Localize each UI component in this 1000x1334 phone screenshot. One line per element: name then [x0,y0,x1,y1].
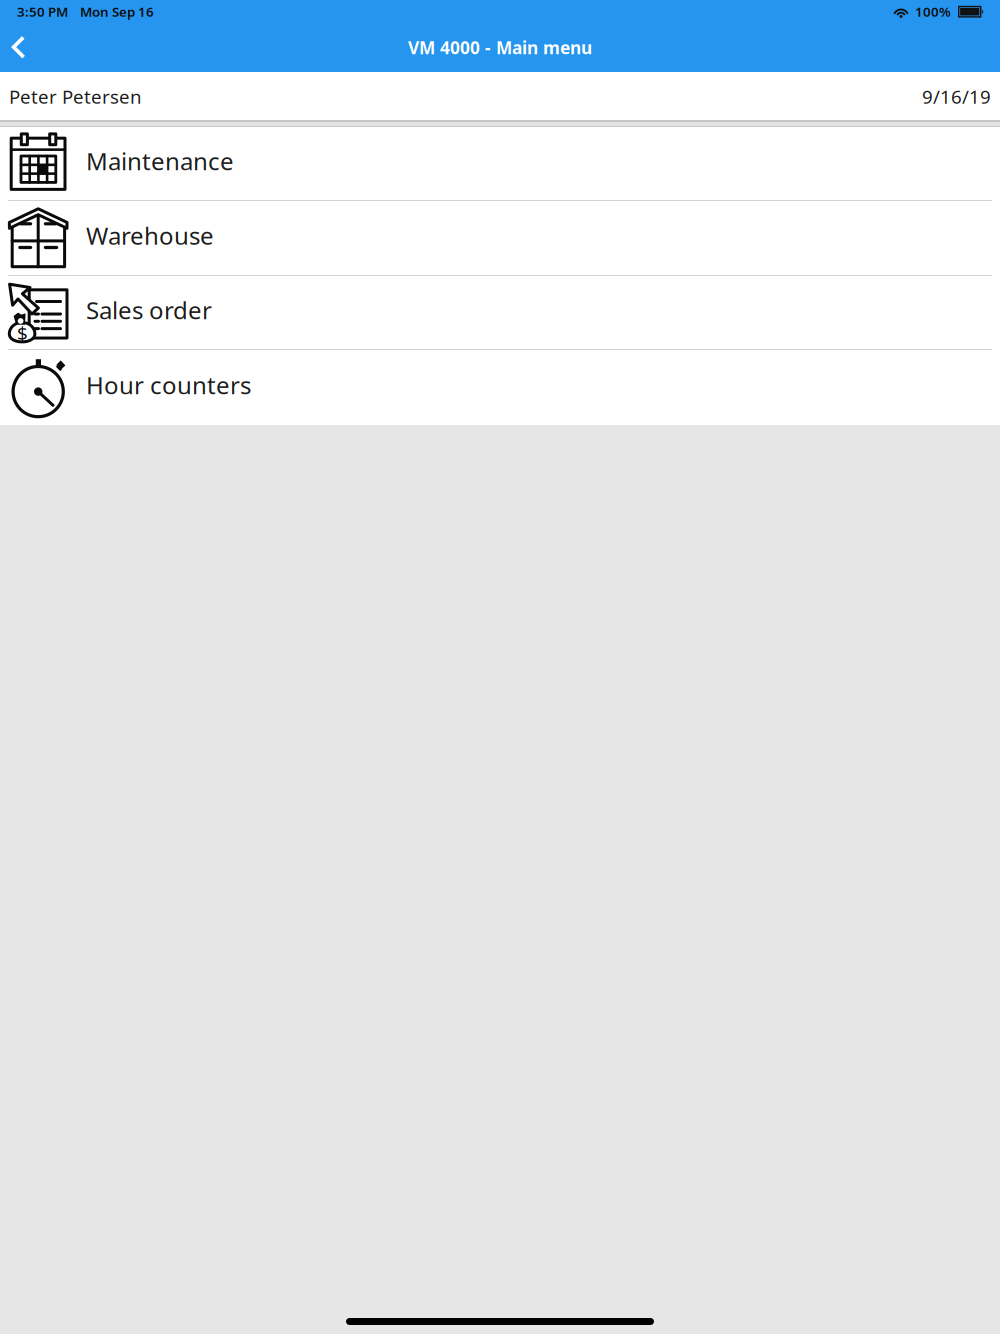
staticText: Hour counters [86,369,251,401]
staticText: 9/16/19 [922,84,991,109]
staticText: 3:50 PM [17,3,68,20]
staticText: 100% [915,3,951,20]
staticText: Peter Petersen [9,84,142,109]
button[interactable]: Hour counters [0,350,1000,425]
button[interactable]: $ [0,276,1000,350]
staticText: Sales order [86,294,212,326]
staticText: $ [17,320,28,345]
staticText: Maintenance [86,145,234,177]
staticText: VM 4000 - Main menu [408,36,592,59]
button[interactable]: Maintenance [0,127,1000,201]
button[interactable]: Warehouse [0,201,1000,276]
staticText: Warehouse [86,220,214,251]
staticText: Mon Sep 16 [80,3,154,20]
button[interactable]: Back [0,32,44,63]
